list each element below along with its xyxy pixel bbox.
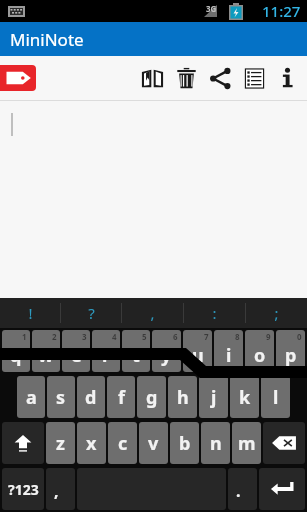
staticText: p bbox=[285, 343, 297, 368]
button[interactable]: 4 bbox=[92, 330, 120, 372]
staticText: , bbox=[54, 480, 59, 502]
staticText: i bbox=[226, 343, 232, 368]
button[interactable]: Book bbox=[135, 58, 169, 98]
staticText: o bbox=[254, 343, 266, 368]
staticText: . bbox=[236, 480, 241, 502]
button[interactable]: Share bbox=[203, 58, 237, 98]
staticText: 4 bbox=[112, 331, 117, 342]
staticText: 3 bbox=[82, 331, 87, 342]
staticText: g bbox=[146, 385, 158, 410]
staticText: 7 bbox=[204, 331, 209, 342]
button[interactable]: Info bbox=[271, 58, 303, 98]
button[interactable]: Delete bbox=[169, 58, 203, 98]
staticText: j bbox=[211, 385, 217, 410]
staticText: x bbox=[86, 431, 97, 456]
button[interactable]: 5 bbox=[122, 330, 150, 372]
staticText: 2 bbox=[52, 331, 57, 342]
staticText: u bbox=[192, 343, 204, 368]
staticText: d bbox=[85, 385, 97, 410]
staticText: b bbox=[179, 431, 191, 456]
staticText: 1 bbox=[22, 331, 27, 342]
button[interactable]: 1 bbox=[2, 330, 30, 372]
staticText: y bbox=[161, 343, 172, 368]
button[interactable]: g bbox=[137, 376, 166, 418]
staticText: k bbox=[239, 385, 251, 410]
staticText: t bbox=[132, 343, 140, 368]
staticText: ; bbox=[274, 303, 279, 323]
staticText: l bbox=[273, 385, 279, 410]
button[interactable]: c bbox=[108, 422, 137, 464]
staticText: r bbox=[102, 343, 111, 368]
staticText: e bbox=[71, 343, 82, 368]
staticText: : bbox=[212, 303, 217, 323]
button[interactable]: Enter bbox=[259, 468, 305, 510]
staticText: ! bbox=[28, 303, 33, 323]
staticText: m bbox=[238, 431, 256, 456]
staticText: h bbox=[177, 385, 189, 410]
staticText: ? bbox=[88, 303, 95, 323]
button[interactable]: 3 bbox=[62, 330, 90, 372]
button[interactable]: k bbox=[230, 376, 259, 418]
staticText: c bbox=[118, 431, 128, 456]
button[interactable]: m bbox=[232, 422, 261, 464]
button[interactable]: Backspace bbox=[263, 422, 305, 464]
button[interactable]: 6 bbox=[152, 330, 181, 372]
button[interactable]: 7 bbox=[183, 330, 212, 372]
button[interactable]: v bbox=[139, 422, 168, 464]
staticText: v bbox=[148, 431, 159, 456]
button[interactable]: 8 bbox=[214, 330, 243, 372]
button[interactable]: Shift bbox=[2, 422, 44, 464]
button[interactable]: ! bbox=[0, 298, 60, 328]
button[interactable]: 9 bbox=[245, 330, 274, 372]
staticText: 8 bbox=[235, 331, 240, 342]
button[interactable]: 2 bbox=[32, 330, 60, 372]
staticText: , bbox=[150, 303, 155, 323]
button[interactable]: , bbox=[122, 298, 183, 328]
staticText: 0 bbox=[297, 331, 302, 342]
staticText: n bbox=[210, 431, 222, 456]
staticText: MiniNote bbox=[10, 28, 84, 51]
staticText: q bbox=[10, 343, 22, 368]
button[interactable]: f bbox=[107, 376, 135, 418]
button[interactable]: s bbox=[47, 376, 75, 418]
button[interactable]: : bbox=[184, 298, 245, 328]
button[interactable]: Label bbox=[0, 65, 36, 91]
button[interactable]: ? bbox=[61, 298, 121, 328]
button[interactable]: d bbox=[77, 376, 105, 418]
staticText: s bbox=[56, 385, 66, 410]
button[interactable]: . bbox=[228, 468, 257, 510]
button[interactable]: n bbox=[201, 422, 230, 464]
button[interactable]: 0 bbox=[276, 330, 305, 372]
button[interactable]: b bbox=[170, 422, 199, 464]
button[interactable]: a bbox=[17, 376, 45, 418]
staticText: z bbox=[56, 431, 65, 456]
staticText: a bbox=[26, 385, 37, 410]
button[interactable]: h bbox=[168, 376, 197, 418]
button[interactable]: ?123 bbox=[2, 468, 44, 510]
staticText: 5 bbox=[142, 331, 147, 342]
button[interactable]: j bbox=[199, 376, 228, 418]
staticText: 6 bbox=[173, 331, 178, 342]
staticText: f bbox=[118, 385, 125, 410]
staticText: 11:27 bbox=[262, 1, 301, 21]
staticText: ?123 bbox=[8, 480, 39, 499]
button[interactable]: , bbox=[46, 468, 75, 510]
button[interactable]: x bbox=[77, 422, 106, 464]
button[interactable]: l bbox=[261, 376, 290, 418]
button[interactable]: z bbox=[46, 422, 75, 464]
button[interactable]: ; bbox=[246, 298, 307, 328]
staticText: w bbox=[38, 343, 54, 368]
staticText: 3G bbox=[206, 3, 217, 14]
staticText: 9 bbox=[266, 331, 271, 342]
button[interactable]: List bbox=[237, 58, 271, 98]
